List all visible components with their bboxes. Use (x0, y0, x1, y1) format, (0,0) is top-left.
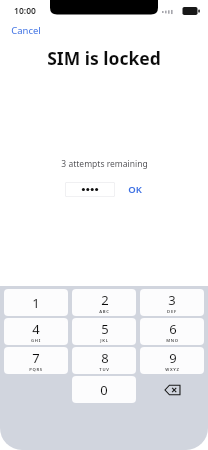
button[interactable]: Backspace (138, 376, 206, 403)
staticText: GHI (31, 338, 41, 344)
staticText: 10:00 (14, 5, 36, 17)
button[interactable]: OK (126, 181, 144, 198)
button[interactable]: 4 (4, 318, 68, 345)
button[interactable]: 8 (72, 347, 136, 374)
staticText: DEF (167, 309, 177, 315)
button[interactable]: 3 (140, 289, 204, 316)
staticText: MNO (166, 338, 179, 344)
staticText: 6 (169, 320, 177, 338)
staticText: SIM is locked (47, 46, 161, 70)
button[interactable]: 0 (72, 376, 136, 403)
button[interactable]: 5 (72, 318, 136, 345)
staticText: PQRS (29, 367, 43, 373)
staticText: 4 (32, 320, 40, 338)
staticText: Cancel (11, 24, 41, 37)
staticText: WXYZ (165, 367, 180, 373)
staticText: 2 (101, 291, 109, 309)
staticText: 8 (101, 349, 109, 367)
staticText: ABC (99, 309, 110, 315)
button[interactable]: Cancel (9, 22, 43, 39)
staticText: 1 (32, 294, 40, 312)
button[interactable]: 6 (140, 318, 204, 345)
button[interactable] (65, 182, 115, 197)
staticText: 7 (32, 349, 40, 367)
staticText: 5 (101, 320, 109, 338)
button[interactable]: 2 (72, 289, 136, 316)
button[interactable]: 7 (4, 347, 68, 374)
button[interactable]: 9 (140, 347, 204, 374)
staticText: 3 attempts remaining (61, 158, 148, 170)
staticText: JKL (100, 338, 109, 344)
button[interactable]: 1 (4, 289, 68, 316)
staticText: 3 (168, 291, 176, 309)
staticText: TUV (99, 367, 110, 373)
staticText: 9 (169, 349, 177, 367)
staticText: OK (128, 183, 142, 196)
staticText: 0 (100, 381, 108, 399)
